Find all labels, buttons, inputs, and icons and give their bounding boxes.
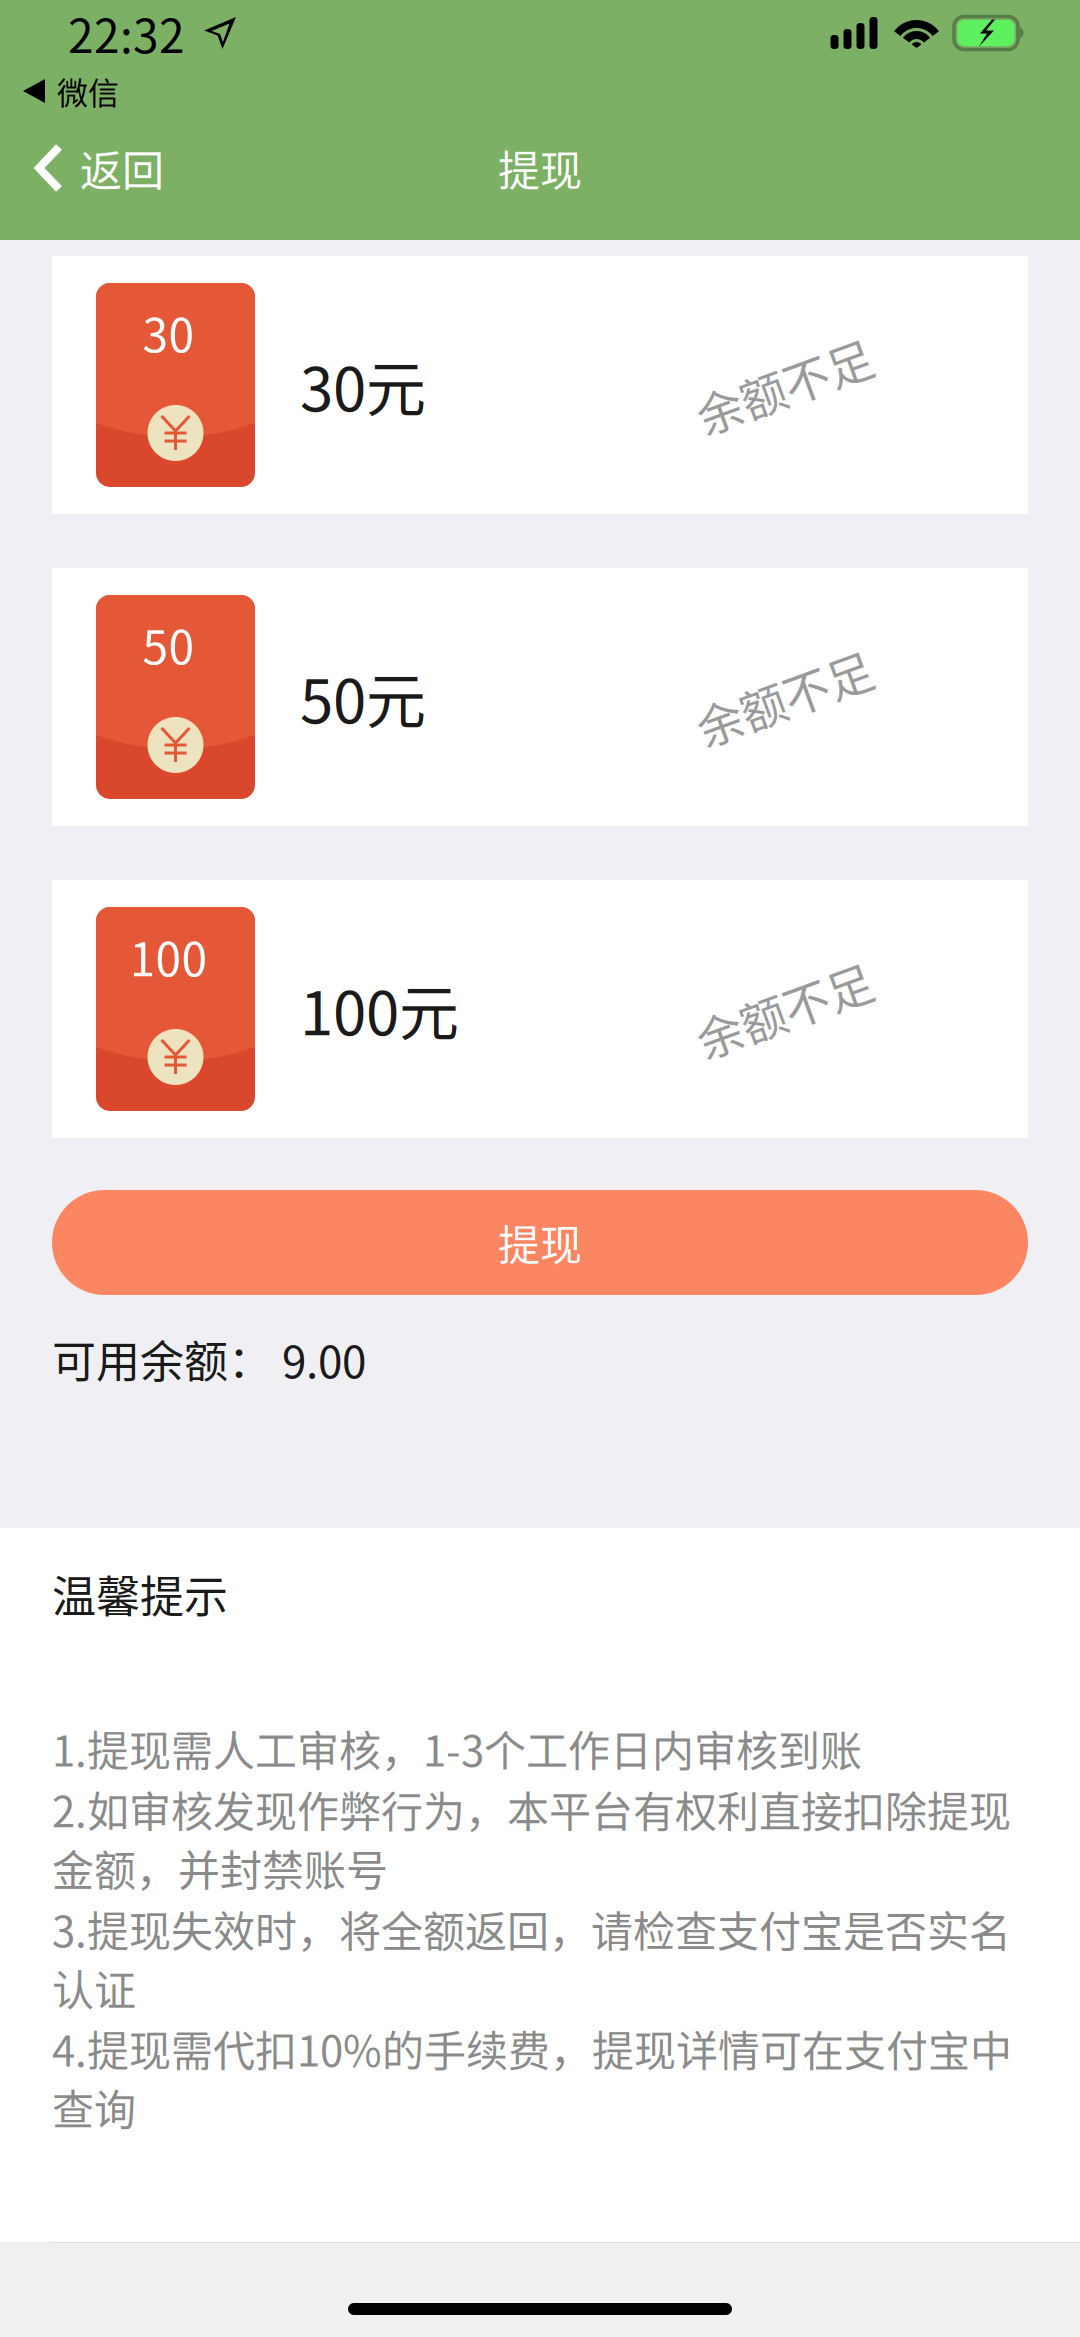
button[interactable]: 100 (52, 880, 1028, 1138)
staticText: 22:32 (68, 0, 185, 66)
staticText: 余额不足 (692, 352, 876, 418)
staticText: 1.提现需人工审核，1-3个工作日内审核到账 (52, 1718, 862, 1778)
button[interactable]: 50 (52, 568, 1028, 826)
button[interactable]: 提现 (52, 1190, 1028, 1295)
staticText: 2.如审核发现作弊行为，本平台有权利直接扣除提现金额，并封禁账号 (52, 1778, 1011, 1898)
staticText: 返回 (80, 138, 164, 198)
staticText: 提现 (498, 138, 582, 198)
staticText: 余额不足 (692, 976, 876, 1042)
staticText: 100 (129, 923, 207, 990)
staticText: 提现 (498, 1212, 582, 1273)
staticText: 30 (142, 299, 194, 366)
staticText: 温馨提示 (52, 1562, 228, 1626)
staticText: 可用余额： 9.00 (52, 1327, 366, 1391)
staticText: 30元 (300, 342, 426, 428)
staticText: 100元 (300, 966, 459, 1052)
staticText: 余额不足 (692, 664, 876, 730)
staticText: 4.提现需代扣10%的手续费，提现详情可在支付宝中查询 (52, 2018, 1012, 2137)
staticText: 3.提现失效时，将全额返回，请检查支付宝是否实名认证 (52, 1898, 1011, 2018)
button[interactable]: 30 (52, 256, 1028, 514)
button[interactable]: 返回 (0, 122, 188, 214)
staticText: 50 (142, 611, 194, 678)
staticText: 50元 (300, 654, 426, 740)
staticText: 微信 (57, 69, 119, 113)
